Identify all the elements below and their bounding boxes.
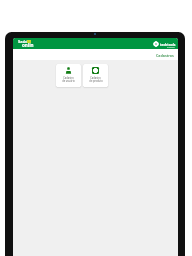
- staticText: Cadastro: [90, 76, 101, 79]
- staticText: online: [22, 42, 36, 53]
- button[interactable]: Cadastro de produto: [83, 64, 108, 87]
- staticText: Cadastro: [63, 76, 74, 79]
- staticText: techtools: [160, 42, 176, 46]
- other: Cadastro de produto: [92, 67, 99, 74]
- staticText: solutions: [167, 46, 175, 48]
- staticText: Cadastros: [156, 53, 174, 58]
- staticText: de produto: [89, 79, 103, 82]
- other: Cadastro de usuario: [65, 67, 72, 74]
- staticText: Saúde: [18, 39, 31, 45]
- staticText: de usuário: [62, 79, 75, 82]
- button[interactable]: Cadastro de usuario: [56, 64, 81, 87]
